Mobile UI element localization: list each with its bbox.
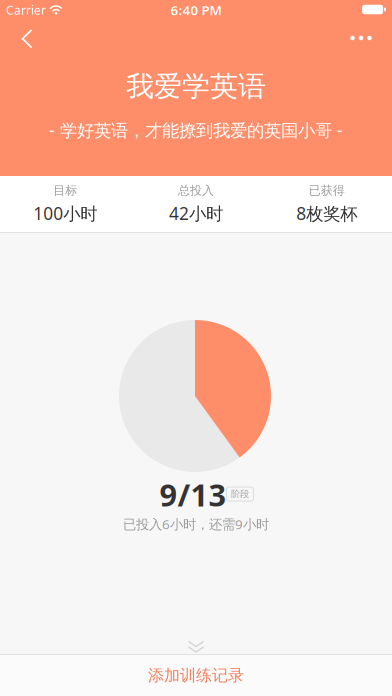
staticText: - 学好英语，才能撩到我爱的英国小哥 - — [49, 118, 343, 141]
staticText: 添加训练记录 — [148, 666, 244, 685]
button[interactable]: More — [339, 23, 383, 53]
staticText: 已获得 — [309, 183, 345, 198]
staticText: 9/13 — [159, 474, 226, 515]
button[interactable]: Back — [5, 24, 49, 54]
staticText: 100小时 — [33, 202, 97, 225]
staticText: 目标 — [53, 183, 77, 198]
staticText: 42小时 — [169, 202, 223, 225]
staticText: 8枚奖杯 — [296, 202, 357, 225]
button[interactable]: 展开 — [188, 641, 203, 652]
staticText: Carrier — [6, 2, 46, 18]
staticText: 阶段 — [231, 488, 249, 500]
staticText: 6:40 PM — [170, 1, 221, 19]
button[interactable]: 添加训练记录 — [0, 655, 392, 696]
staticText: 已投入6小时，还需9小时 — [123, 515, 269, 533]
staticText: 我爱学英语 — [126, 69, 266, 104]
staticText: 总投入 — [178, 183, 214, 198]
